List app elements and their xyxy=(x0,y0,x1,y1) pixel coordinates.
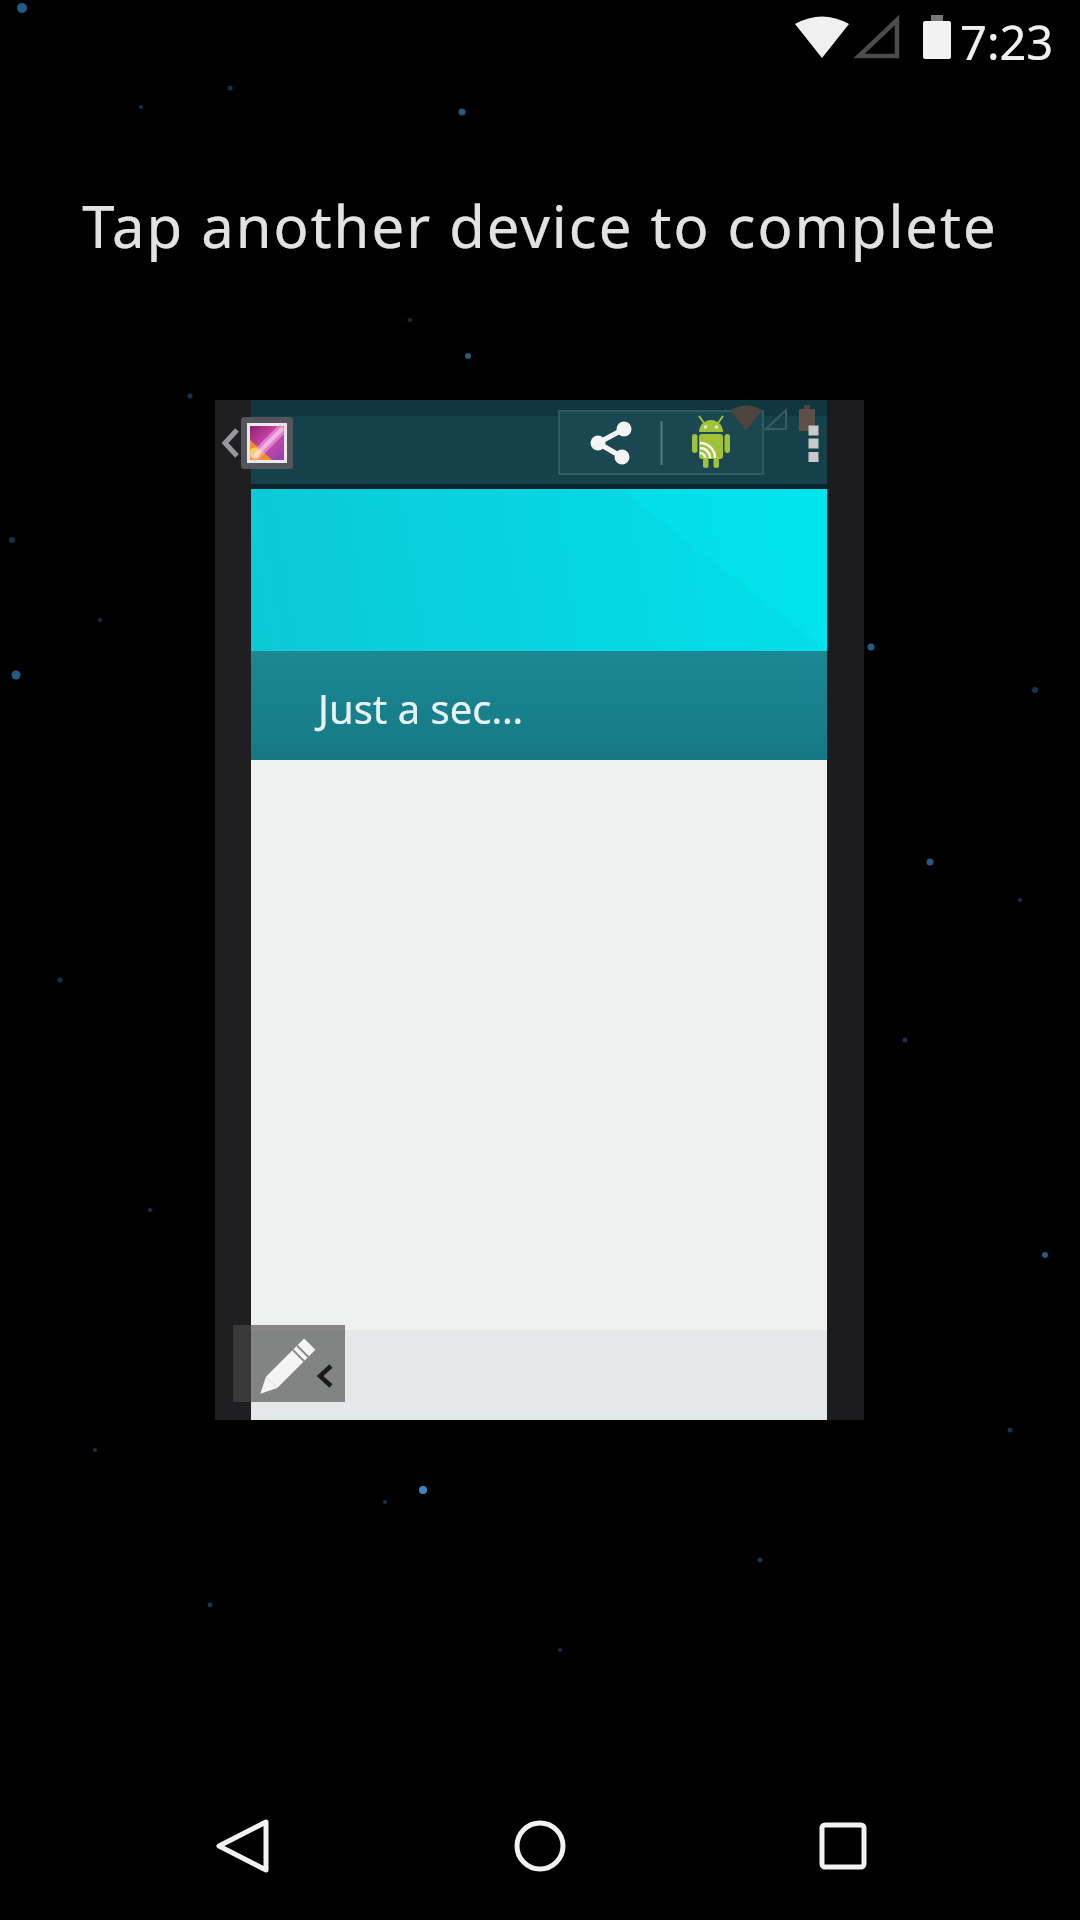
button[interactable] xyxy=(193,1796,293,1896)
button[interactable] xyxy=(800,420,827,468)
staticText: Just a sec… xyxy=(318,681,524,735)
button[interactable] xyxy=(233,1325,345,1402)
button[interactable] xyxy=(559,411,763,474)
button[interactable] xyxy=(241,417,293,469)
staticText: Tap another device to complete xyxy=(0,186,1080,265)
button[interactable] xyxy=(793,1796,893,1896)
button[interactable] xyxy=(490,1796,590,1896)
button[interactable] xyxy=(215,400,250,484)
staticText: 7:23 xyxy=(960,10,1054,74)
